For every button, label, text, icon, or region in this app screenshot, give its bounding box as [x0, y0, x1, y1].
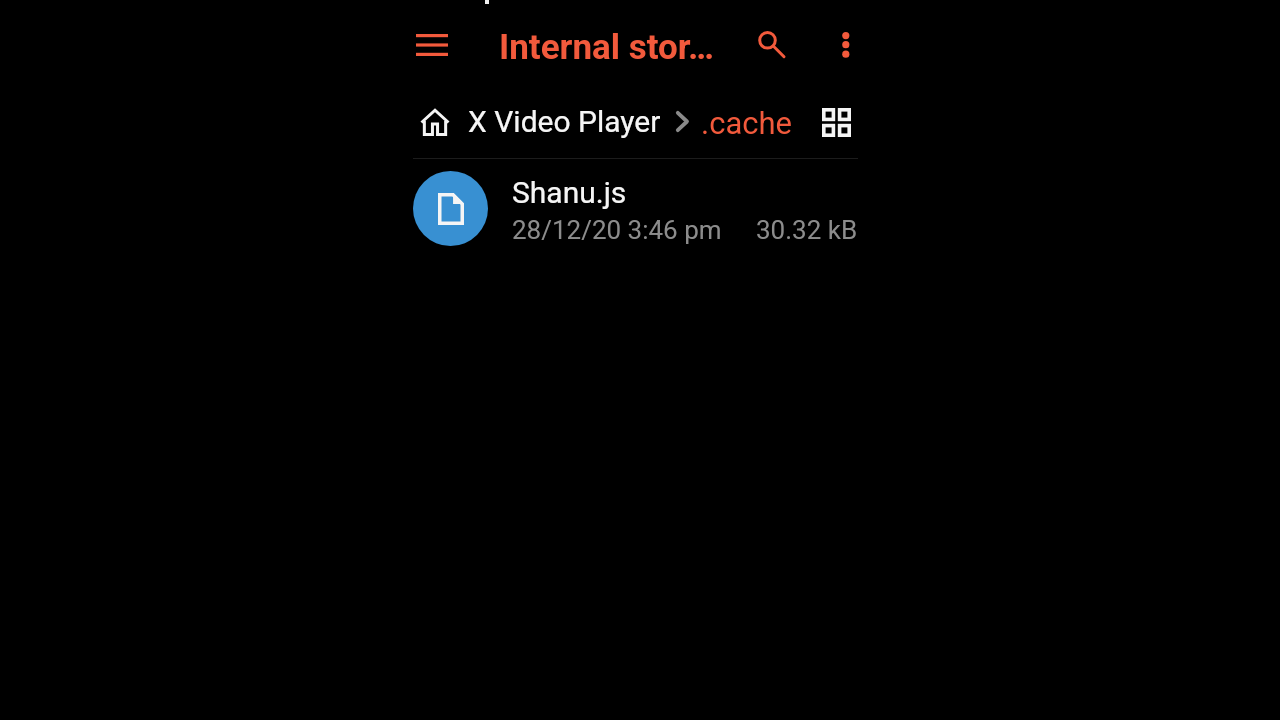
staticText: Internal stor…: [499, 27, 714, 68]
button[interactable]: Navigation menu: [404, 17, 460, 73]
button[interactable]: Search: [744, 18, 790, 64]
button[interactable]: .cache: [701, 105, 793, 141]
button[interactable]: Grid view: [810, 98, 860, 146]
staticText: 30.32 kB: [756, 215, 858, 245]
button[interactable]: X Video Player: [468, 104, 661, 139]
button[interactable]: More options: [823, 18, 869, 64]
button[interactable]: Shanu.js: [413, 160, 858, 257]
button[interactable]: Home: [410, 100, 458, 144]
staticText: .cache: [701, 105, 793, 141]
staticText: Shanu.js: [512, 175, 627, 210]
staticText: X Video Player: [468, 104, 661, 139]
staticText: 28/12/20 3:46 pm: [512, 215, 722, 245]
